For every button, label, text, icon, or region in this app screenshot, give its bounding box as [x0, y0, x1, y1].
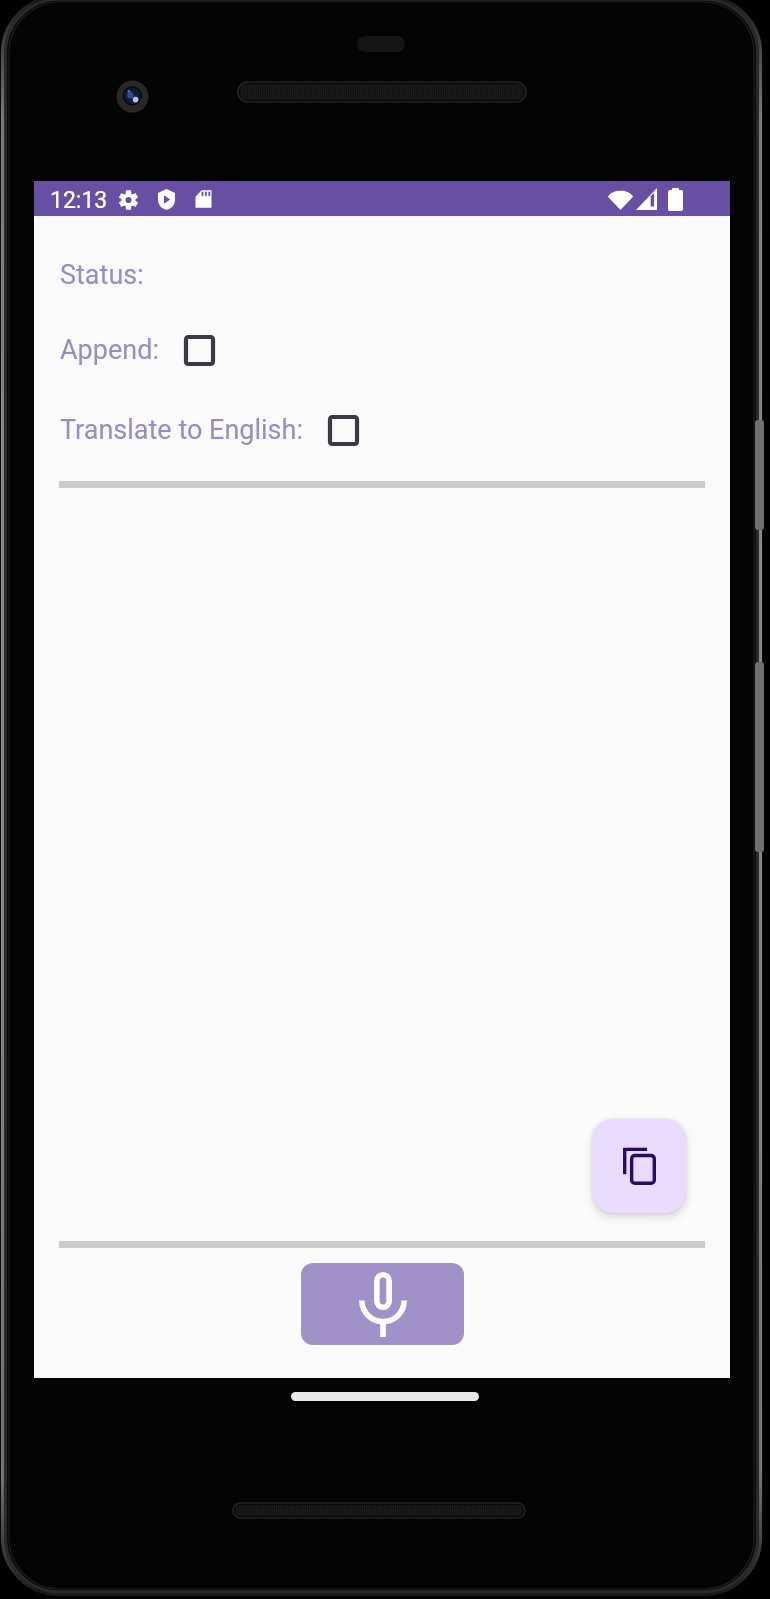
button[interactable]: Toggle option: [184, 335, 215, 366]
button[interactable]: Record speech: [301, 1263, 464, 1345]
button[interactable]: Toggle option: [328, 415, 359, 446]
staticText: Status:: [60, 259, 144, 291]
staticText: Append:: [60, 334, 159, 366]
staticText: Translate to English:: [60, 414, 303, 446]
button[interactable]: Copy to clipboard: [592, 1119, 686, 1213]
staticText: 12:13: [50, 187, 108, 214]
